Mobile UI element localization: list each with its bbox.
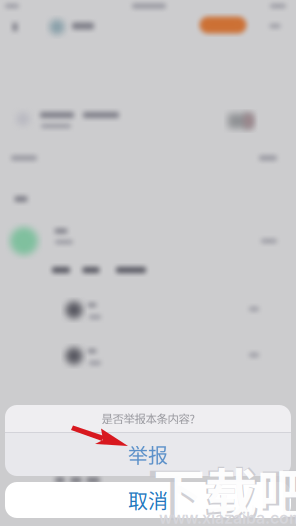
staticText: 下载吧 — [147, 449, 296, 526]
staticText: 取消 — [128, 485, 168, 514]
staticText: 下载吧 — [153, 452, 296, 526]
button[interactable]: 举报 — [5, 433, 291, 476]
staticText: 是否举报本条内容? — [101, 410, 194, 427]
staticText: www.xiazaiba.com — [159, 508, 296, 526]
staticText: 举报 — [128, 440, 168, 469]
button[interactable]: 取消 — [5, 482, 291, 518]
